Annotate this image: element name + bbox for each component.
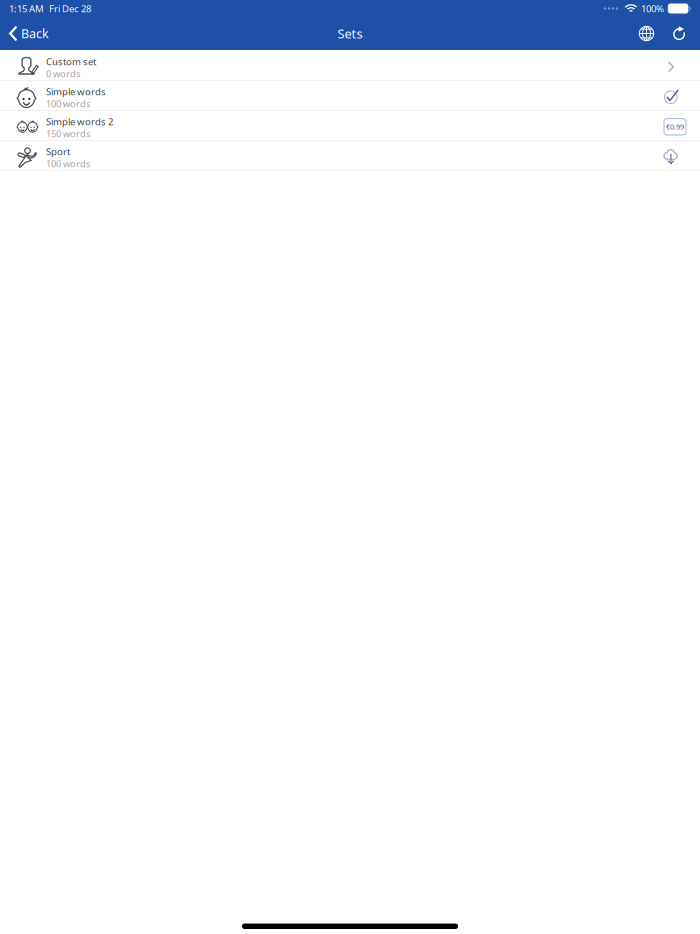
staticText: Sets (337, 25, 362, 42)
staticText: Simple words 2 (46, 115, 113, 128)
button[interactable]: Back (0, 17, 57, 50)
staticText: 150 words (46, 127, 90, 140)
staticText: Fri Dec 28 (49, 2, 91, 15)
button[interactable]: Simple words (0, 81, 700, 111)
staticText: 100% (641, 2, 664, 15)
button[interactable]: Language (630, 17, 663, 50)
staticText: Back (21, 25, 49, 42)
staticText: 0 words (46, 67, 80, 80)
button[interactable]: €0.99 (664, 119, 686, 135)
staticText: Custom set (46, 55, 96, 68)
button[interactable]: Sport (0, 141, 700, 171)
button[interactable]: Refresh (663, 17, 697, 50)
button[interactable]: Custom set (0, 51, 700, 81)
staticText: 1:15 AM (9, 2, 44, 15)
staticText: €0.99 (666, 122, 684, 132)
button[interactable]: Simple words 2 (0, 111, 700, 141)
staticText: 100 words (46, 97, 90, 110)
staticText: Sport (46, 145, 70, 158)
staticText: Simple words (46, 85, 106, 98)
staticText: 100 words (46, 157, 90, 170)
